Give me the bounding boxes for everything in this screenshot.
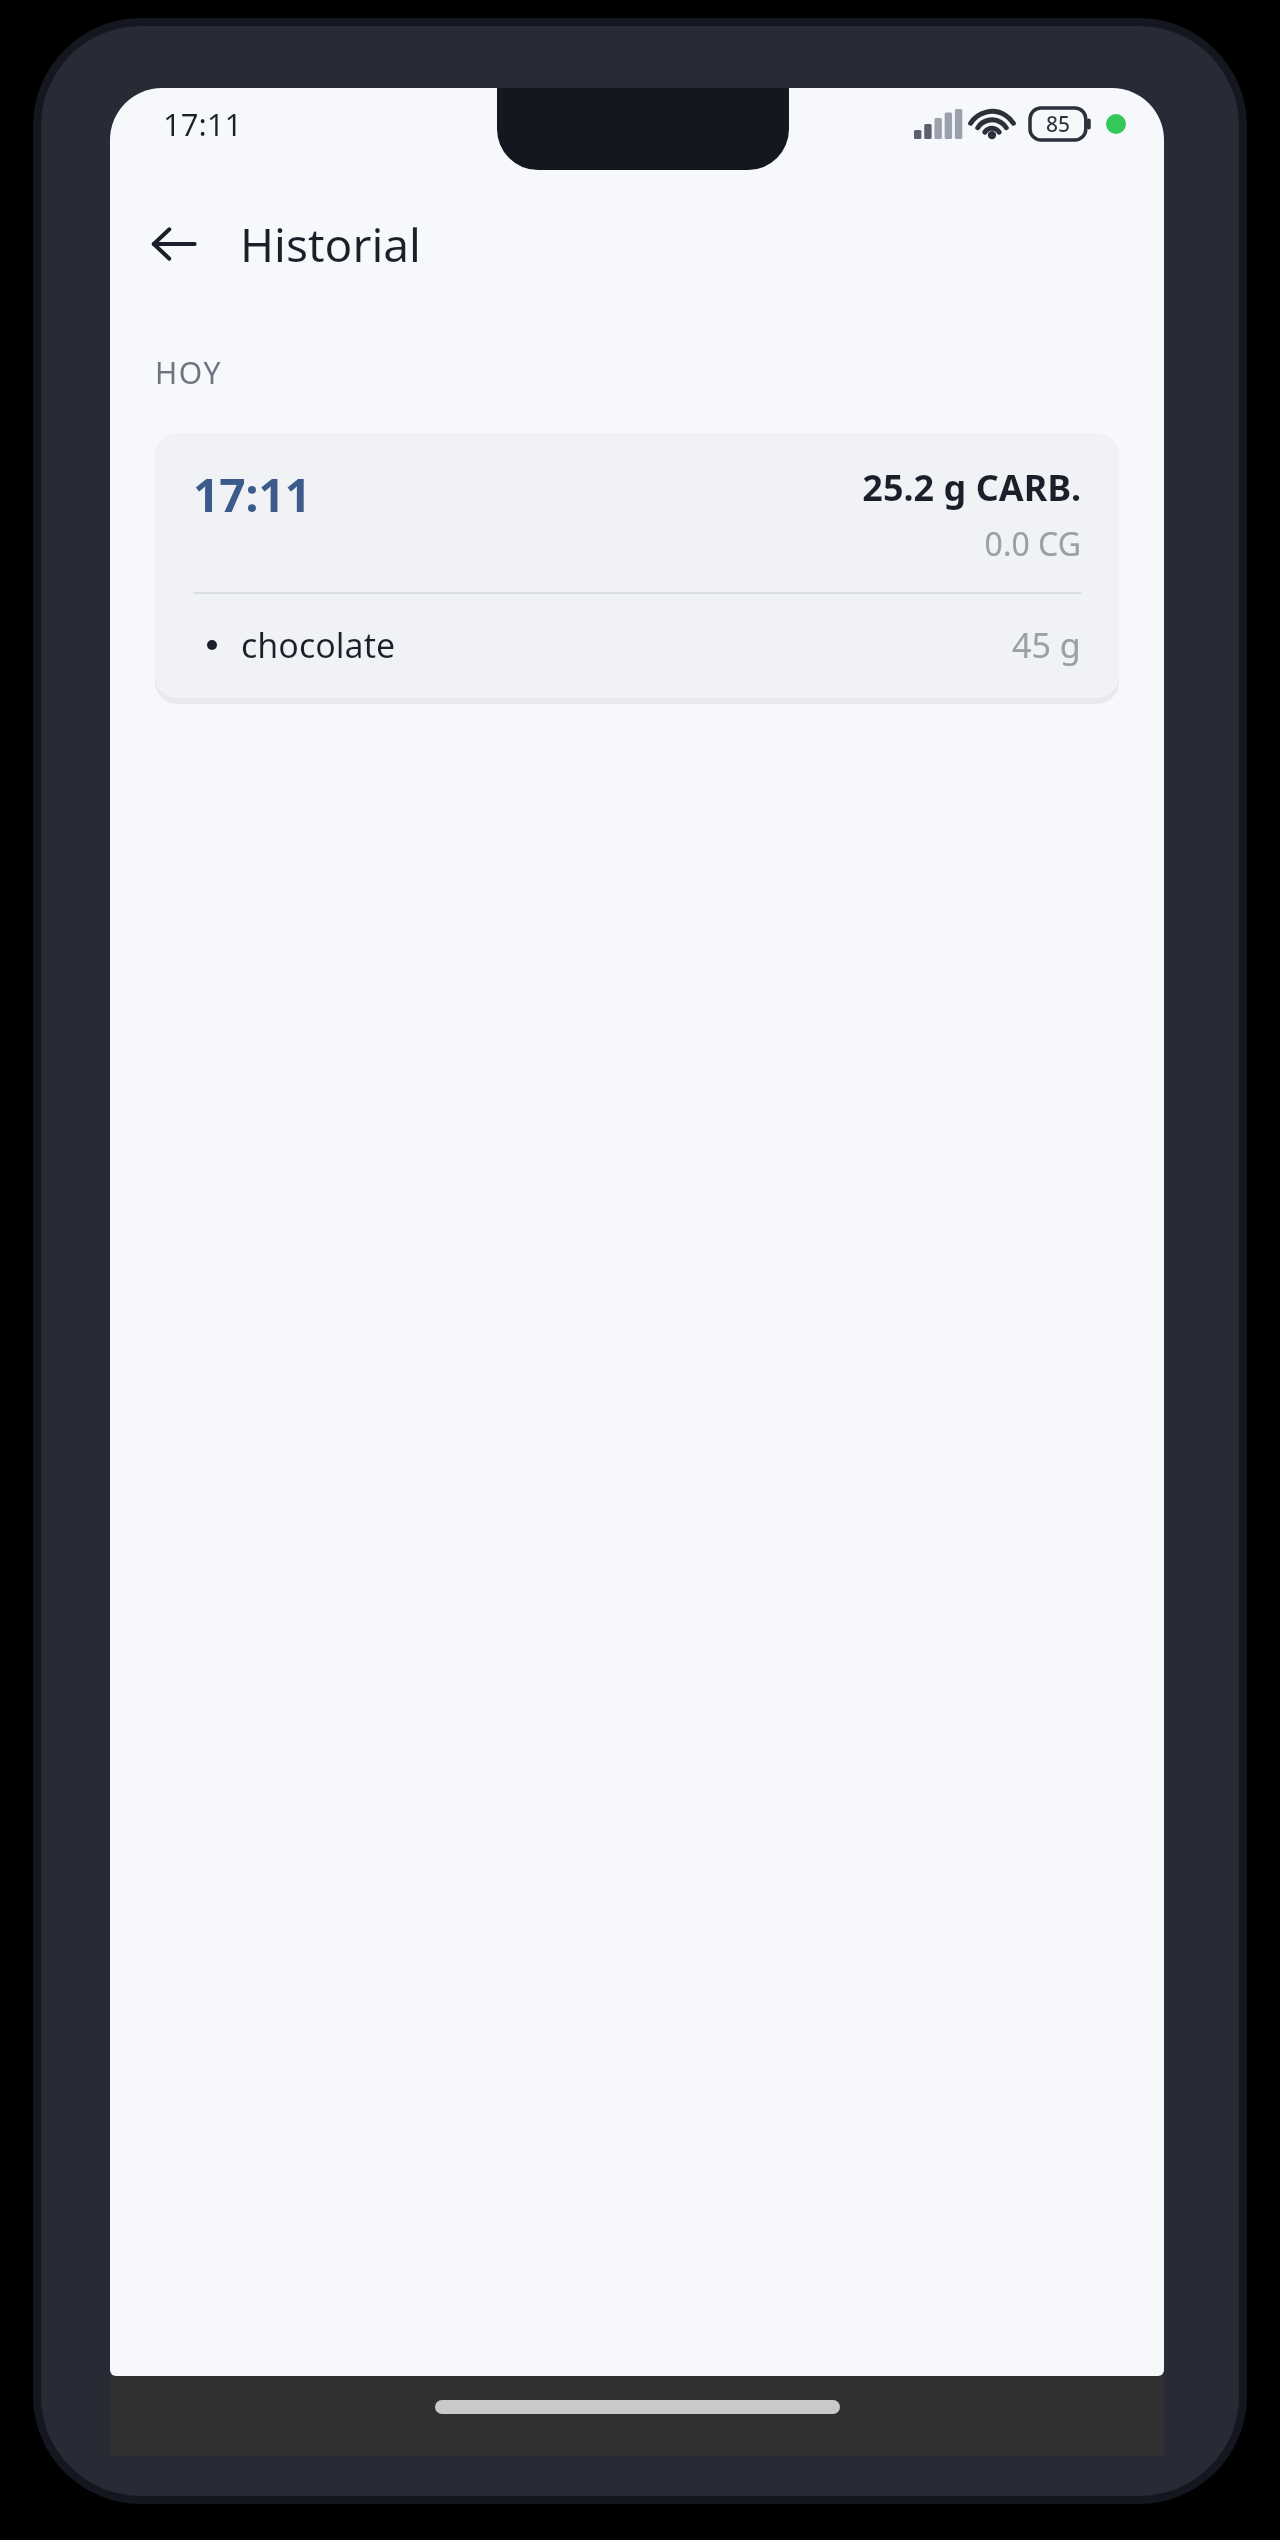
staticText: 85	[1046, 110, 1071, 139]
staticText: 25.2 g CARB.	[862, 463, 1081, 512]
button[interactable]: 17:11	[155, 433, 1119, 698]
staticText: 17:11	[193, 463, 312, 526]
staticText: chocolate	[241, 622, 396, 668]
staticText: 17:11	[163, 103, 243, 145]
staticText: HOY	[155, 352, 223, 393]
staticText: 45 g	[1012, 622, 1081, 668]
staticText: Historial	[240, 213, 421, 276]
staticText: 0.0 CG	[984, 522, 1081, 566]
button[interactable]: Back	[132, 202, 216, 286]
